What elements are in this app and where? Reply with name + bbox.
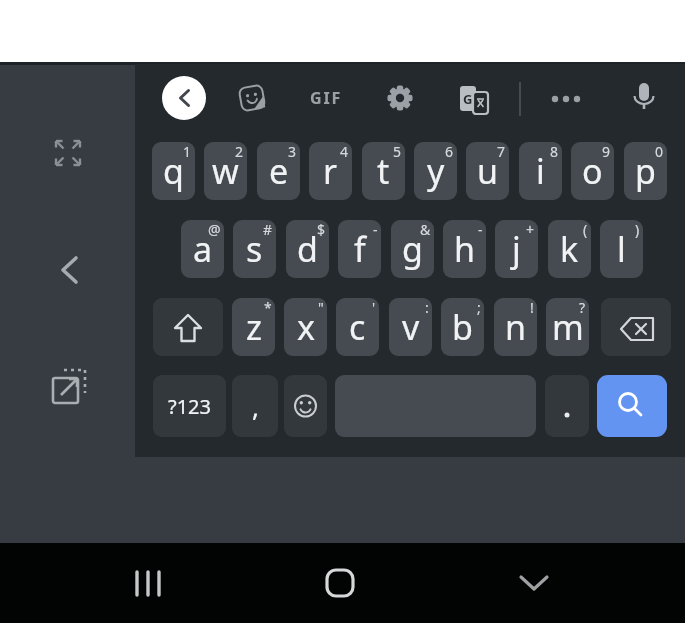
button[interactable]: [48, 364, 92, 408]
staticText: k: [560, 226, 579, 272]
staticText: $: [317, 220, 326, 239]
button[interactable]: i: [519, 142, 562, 200]
staticText: ;: [477, 298, 481, 317]
button[interactable]: p: [624, 142, 667, 200]
staticText: t: [377, 148, 390, 194]
staticText: p: [635, 148, 656, 194]
button[interactable]: [548, 88, 584, 108]
button[interactable]: [511, 560, 557, 606]
button[interactable]: [50, 250, 90, 290]
button[interactable]: [122, 560, 176, 606]
staticText: GIF: [310, 87, 342, 109]
staticText: -: [478, 220, 483, 239]
staticText: #: [263, 220, 273, 239]
button[interactable]: ,: [232, 375, 278, 437]
button[interactable]: t: [362, 142, 405, 200]
staticText: w: [212, 148, 239, 194]
button[interactable]: [284, 375, 327, 437]
staticText: d: [297, 226, 318, 272]
staticText: 0: [655, 142, 664, 161]
staticText: ': [372, 298, 376, 317]
button[interactable]: r: [309, 142, 352, 200]
staticText: *: [264, 298, 272, 317]
button[interactable]: [628, 80, 660, 116]
staticText: i: [536, 148, 545, 194]
staticText: +: [526, 220, 535, 239]
staticText: y: [427, 148, 445, 194]
button[interactable]: k: [548, 220, 591, 278]
staticText: :: [425, 298, 429, 317]
staticText: 4: [340, 142, 349, 161]
button[interactable]: h: [443, 220, 486, 278]
staticText: a: [193, 226, 213, 272]
staticText: ?123: [168, 393, 211, 420]
button[interactable]: [386, 84, 414, 112]
staticText: 8: [550, 142, 559, 161]
button[interactable]: w: [204, 142, 247, 200]
button[interactable]: u: [466, 142, 509, 200]
staticText: e: [269, 148, 289, 194]
staticText: 1: [183, 142, 192, 161]
button[interactable]: j: [495, 220, 538, 278]
staticText: b: [452, 304, 473, 350]
button[interactable]: GIF: [305, 84, 347, 112]
button[interactable]: [48, 133, 88, 173]
button[interactable]: [545, 375, 589, 437]
button[interactable]: [601, 298, 671, 356]
staticText: @: [208, 220, 221, 239]
staticText: l: [617, 226, 626, 272]
staticText: v: [402, 304, 420, 350]
staticText: n: [505, 304, 527, 350]
button[interactable]: x: [284, 298, 327, 356]
button[interactable]: s: [233, 220, 276, 278]
button[interactable]: y: [414, 142, 457, 200]
staticText: 3: [288, 142, 297, 161]
staticText: 5: [393, 142, 402, 161]
staticText: (: [583, 220, 588, 239]
button[interactable]: [317, 560, 363, 606]
staticText: 9: [602, 142, 611, 161]
staticText: r: [323, 148, 338, 194]
staticText: j: [512, 226, 521, 272]
staticText: o: [582, 148, 603, 194]
button[interactable]: d: [286, 220, 329, 278]
staticText: g: [402, 226, 423, 272]
button[interactable]: e: [257, 142, 300, 200]
button[interactable]: z: [232, 298, 275, 356]
button[interactable]: a: [181, 220, 224, 278]
staticText: !: [530, 298, 534, 317]
button[interactable]: b: [441, 298, 484, 356]
button[interactable]: v: [389, 298, 432, 356]
button[interactable]: f: [338, 220, 381, 278]
staticText: ?: [579, 298, 586, 317]
button[interactable]: c: [336, 298, 379, 356]
button[interactable]: [238, 84, 266, 112]
staticText: c: [349, 304, 366, 350]
staticText: &: [420, 220, 431, 239]
button[interactable]: o: [571, 142, 614, 200]
staticText: z: [246, 304, 262, 350]
staticText: -: [373, 220, 378, 239]
button[interactable]: m: [546, 298, 589, 356]
button[interactable]: [153, 298, 223, 356]
staticText: ": [318, 298, 324, 317]
button[interactable]: ?123: [153, 375, 226, 437]
button[interactable]: [162, 76, 206, 120]
button[interactable]: [597, 375, 667, 437]
button[interactable]: l: [600, 220, 643, 278]
staticText: s: [246, 226, 263, 272]
button[interactable]: g: [391, 220, 434, 278]
button[interactable]: G: [458, 84, 490, 116]
staticText: ,: [252, 389, 259, 424]
staticText: x: [297, 304, 315, 350]
button[interactable]: q: [152, 142, 195, 200]
staticText: f: [354, 226, 366, 272]
staticText: m: [552, 304, 584, 350]
staticText: G: [463, 90, 473, 108]
staticText: 2: [235, 142, 244, 161]
button[interactable]: n: [494, 298, 537, 356]
staticText: h: [454, 226, 476, 272]
staticText: 7: [497, 142, 506, 161]
staticText: q: [163, 148, 184, 194]
